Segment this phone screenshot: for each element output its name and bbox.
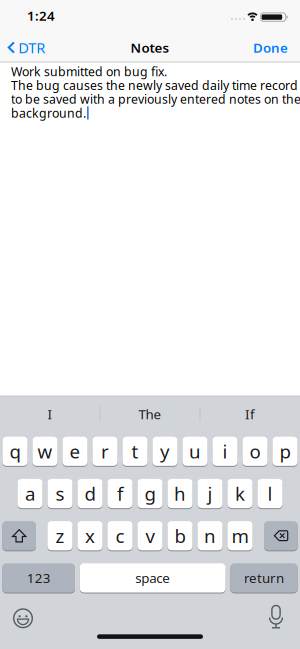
staticText: 123 bbox=[27, 569, 51, 587]
button[interactable]: m bbox=[227, 521, 253, 551]
staticText: v bbox=[145, 523, 154, 548]
button[interactable]: a bbox=[17, 478, 43, 509]
staticText: o bbox=[249, 439, 260, 464]
button[interactable]: e bbox=[62, 436, 88, 466]
button[interactable]: space bbox=[80, 563, 226, 593]
button[interactable]: c bbox=[107, 521, 133, 551]
button[interactable]: u bbox=[182, 436, 208, 466]
button[interactable]: k bbox=[227, 478, 253, 509]
staticText: Work submitted on bug fix. bbox=[11, 63, 167, 80]
staticText: I bbox=[47, 405, 52, 423]
button[interactable]: 123 bbox=[2, 563, 75, 593]
staticText: j bbox=[207, 481, 212, 506]
button[interactable]: t bbox=[122, 436, 148, 466]
staticText: m bbox=[231, 523, 248, 548]
staticText: background. bbox=[11, 104, 86, 121]
staticText: c bbox=[115, 523, 124, 548]
staticText: 1:24 bbox=[27, 7, 55, 24]
staticText: d bbox=[84, 481, 95, 506]
button[interactable]: If bbox=[201, 396, 299, 432]
button[interactable]: p bbox=[272, 436, 298, 466]
staticText: a bbox=[25, 481, 35, 506]
staticText: t bbox=[131, 439, 138, 464]
button[interactable]: Dictate bbox=[263, 604, 289, 630]
button[interactable]: Emoji bbox=[10, 605, 36, 631]
staticText: The bbox=[138, 405, 161, 423]
button[interactable]: Delete bbox=[264, 521, 298, 551]
staticText: x bbox=[85, 523, 95, 548]
staticText: e bbox=[69, 439, 80, 464]
staticText: f bbox=[117, 481, 123, 506]
button[interactable]: Shift bbox=[2, 521, 36, 551]
button[interactable]: h bbox=[167, 478, 193, 509]
staticText: q bbox=[9, 439, 20, 464]
button[interactable]: z bbox=[47, 521, 73, 551]
button[interactable]: I bbox=[1, 396, 99, 432]
staticText: w bbox=[37, 439, 52, 464]
staticText: z bbox=[55, 523, 64, 548]
button[interactable]: o bbox=[242, 436, 268, 466]
button[interactable]: q bbox=[2, 436, 28, 466]
button[interactable]: r bbox=[92, 436, 118, 466]
button[interactable]: Done bbox=[253, 32, 288, 62]
button[interactable]: x bbox=[77, 521, 103, 551]
button[interactable]: return bbox=[230, 563, 298, 593]
button[interactable]: n bbox=[197, 521, 223, 551]
staticText: Done bbox=[253, 39, 288, 56]
button[interactable]: l bbox=[257, 478, 283, 509]
staticText: to be saved with a previously entered no… bbox=[11, 91, 300, 107]
staticText: k bbox=[235, 481, 245, 506]
staticText: Notes bbox=[130, 39, 169, 56]
staticText: space bbox=[135, 569, 170, 587]
staticText: l bbox=[267, 481, 272, 506]
button[interactable]: b bbox=[167, 521, 193, 551]
staticText: The bug causes the newly saved daily tim… bbox=[11, 77, 298, 94]
staticText: g bbox=[144, 481, 155, 506]
staticText: u bbox=[189, 439, 201, 464]
button[interactable]: DTR bbox=[8, 32, 45, 62]
button[interactable]: s bbox=[47, 478, 73, 509]
button[interactable]: f bbox=[107, 478, 133, 509]
button[interactable]: v bbox=[137, 521, 163, 551]
button[interactable]: j bbox=[197, 478, 223, 509]
staticText: s bbox=[55, 481, 64, 506]
staticText: y bbox=[160, 439, 170, 464]
staticText: n bbox=[204, 523, 216, 548]
staticText: return bbox=[244, 569, 284, 587]
staticText: DTR bbox=[18, 38, 45, 57]
button[interactable]: i bbox=[212, 436, 238, 466]
button[interactable]: y bbox=[152, 436, 178, 466]
staticText: i bbox=[222, 439, 227, 464]
staticText: If bbox=[245, 405, 255, 423]
button[interactable]: w bbox=[32, 436, 58, 466]
staticText: b bbox=[174, 523, 185, 548]
staticText: p bbox=[279, 439, 290, 464]
staticText: r bbox=[101, 439, 109, 464]
button[interactable]: The bbox=[101, 396, 199, 432]
staticText: h bbox=[174, 481, 186, 506]
button[interactable]: d bbox=[77, 478, 103, 509]
button[interactable]: g bbox=[137, 478, 163, 509]
